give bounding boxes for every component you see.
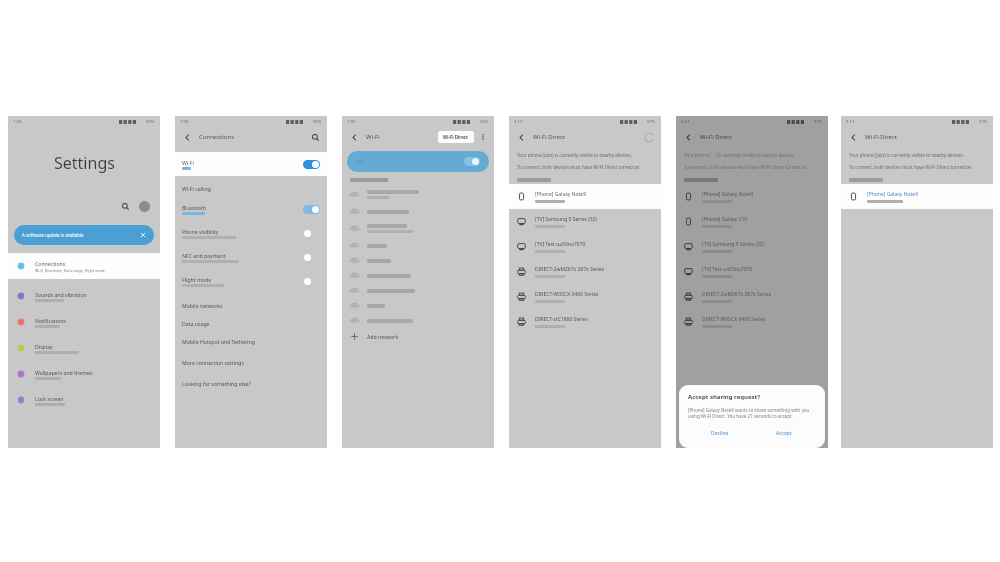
button[interactable] <box>342 238 494 253</box>
staticText: To connect, both devices must have Wi-Fi… <box>517 164 641 170</box>
button[interactable]: Bluetooth <box>175 197 327 221</box>
staticText: Accept <box>776 430 792 437</box>
staticText: Wallpapers and themes <box>35 369 93 376</box>
staticText: Decline <box>711 430 729 437</box>
button[interactable]: DIRECT-2wM267x 287x Series <box>676 284 828 309</box>
staticText: 3:13 <box>846 119 855 125</box>
staticText: Settings <box>54 152 115 174</box>
staticText: Your phone (Jazz) is currently visible t… <box>849 152 964 158</box>
staticText: 97% <box>814 119 823 125</box>
staticText: Mobile networks <box>182 302 223 309</box>
staticText: NFC and payment <box>182 252 226 259</box>
staticText: [TV] Test ua50nu7070 <box>535 241 586 248</box>
staticText: Bluetooth <box>182 204 207 211</box>
button[interactable]: NFC and payment <box>175 245 327 269</box>
button[interactable]: Data usage <box>175 314 327 332</box>
button[interactable]: Account <box>139 201 150 212</box>
button[interactable]: Decline <box>688 427 752 440</box>
button[interactable]: Wi-Fi calling <box>175 179 327 197</box>
button[interactable] <box>342 219 494 238</box>
staticText: [Phone] Galaxy Note9 <box>702 191 753 198</box>
staticText: DIRECT-W0SCX-3400 Series <box>535 291 599 298</box>
button[interactable]: Back <box>181 131 193 143</box>
button[interactable]: Wi-Fi Direct <box>438 131 474 143</box>
button[interactable]: Wallpapers and themes <box>8 361 160 387</box>
staticText: Your phone ( ) is currently visible to n… <box>684 152 796 158</box>
button[interactable]: [Phone] Galaxy S10 <box>676 209 828 234</box>
button[interactable]: More connection settings <box>175 353 327 371</box>
staticText: 2:57 <box>681 119 690 125</box>
staticText: A software update is available <box>22 232 84 238</box>
button[interactable]: Search <box>309 131 321 143</box>
staticText: DIRECT-ztC1860 Series <box>535 316 588 323</box>
button[interactable] <box>342 283 494 298</box>
staticText: [Phone] Galaxy Note9 <box>535 191 586 198</box>
staticText: Wi-Fi <box>366 133 380 141</box>
button[interactable] <box>342 298 494 313</box>
staticText: Wi-Fi Direct <box>700 133 732 141</box>
staticText: Connections <box>199 133 235 141</box>
staticText: 3:13 <box>514 119 523 125</box>
button[interactable]: More options <box>478 132 488 142</box>
staticText: [TV] Samsung 5 Series (32) <box>535 216 597 223</box>
staticText: Lock screen <box>35 395 64 402</box>
button[interactable]: Add network <box>342 328 494 345</box>
button[interactable]: Notifications <box>8 309 160 335</box>
button[interactable] <box>342 268 494 283</box>
button[interactable]: DIRECT-W0SCX-3400 Series <box>509 284 661 309</box>
staticText: Wi-Fi, Bluetooth, Data usage, Flight mod… <box>35 268 105 273</box>
staticText: 1:00 <box>13 119 22 125</box>
button[interactable] <box>342 204 494 219</box>
button[interactable]: On <box>347 151 489 172</box>
staticText: [TV] Test ua50nu7070 <box>702 266 753 273</box>
button[interactable]: Back <box>847 131 859 143</box>
staticText: 1:00 <box>180 119 189 125</box>
button[interactable]: Lock screen <box>8 387 160 413</box>
button[interactable]: Connections <box>8 253 160 279</box>
button[interactable] <box>342 185 494 204</box>
button[interactable]: Phone visibility <box>175 221 327 245</box>
button[interactable]: [Phone] Galaxy Note9 <box>676 184 828 209</box>
button[interactable]: [TV] Test ua50nu7070 <box>676 259 828 284</box>
button[interactable] <box>342 253 494 268</box>
staticText: Display <box>35 343 53 350</box>
button[interactable]: Sounds and vibration <box>8 283 160 309</box>
button[interactable] <box>342 313 494 328</box>
button[interactable]: Mobile networks <box>175 296 327 314</box>
button[interactable]: DIRECT-2wM267x 287x Series <box>509 259 661 284</box>
staticText: 97% <box>979 119 988 125</box>
button[interactable]: [TV] Samsung 5 Series (32) <box>509 209 661 234</box>
staticText: Connections <box>35 260 66 267</box>
button[interactable]: [Phone] Galaxy Note9 <box>509 184 661 209</box>
staticText: To connect, both devices must have Wi-Fi… <box>684 164 808 170</box>
staticText: [Phone] Galaxy Note9 wants to share some… <box>688 407 816 419</box>
button[interactable]: Back <box>682 131 694 143</box>
button[interactable]: Back <box>348 131 360 143</box>
button[interactable]: [Phone] Galaxy Note9 <box>841 184 993 209</box>
staticText: Your phone (Jazz) is currently visible t… <box>517 152 632 158</box>
button[interactable]: Scan <box>643 131 655 143</box>
button[interactable]: DIRECT-W0SCX-3400 Series <box>676 309 828 334</box>
staticText: Flight mode <box>182 276 212 283</box>
staticText: Phone visibility <box>182 228 219 235</box>
button[interactable]: Mobile Hotspot and Tethering <box>175 332 327 350</box>
button[interactable]: [TV] Test ua50nu7070 <box>509 234 661 259</box>
staticText: Notifications <box>35 317 66 324</box>
staticText: 97% <box>647 119 656 125</box>
button[interactable]: Wi-Fi <box>175 152 327 176</box>
staticText: Wi-Fi <box>182 159 194 166</box>
staticText: Wi-Fi Direct <box>533 133 565 141</box>
button[interactable]: Flight mode <box>175 269 327 293</box>
button[interactable]: Looking for something else? <box>175 374 327 392</box>
staticText: Wi-Fi calling <box>182 185 212 192</box>
staticText: Wi-Fi Direct <box>443 134 469 140</box>
button[interactable]: A software update is available <box>14 225 154 245</box>
button[interactable]: DIRECT-ztC1860 Series <box>509 309 661 334</box>
button[interactable]: Search <box>118 199 132 213</box>
staticText: 1:00 <box>347 119 356 125</box>
button[interactable]: Accept <box>752 427 816 440</box>
button[interactable]: [TV] Samsung 5 Series (32) <box>676 234 828 259</box>
button[interactable]: Back <box>515 131 527 143</box>
staticText: Data usage <box>182 320 210 327</box>
button[interactable]: Display <box>8 335 160 361</box>
